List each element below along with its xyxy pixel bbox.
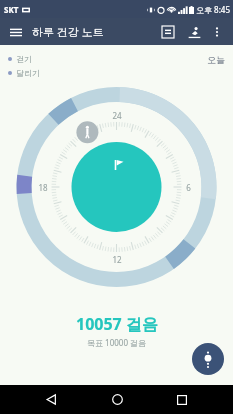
button[interactable]: More options: [207, 22, 227, 42]
staticText: 걷기: [16, 54, 32, 64]
staticText: 24: [112, 110, 122, 121]
button[interactable]: Home: [102, 385, 132, 414]
staticText: 12: [112, 254, 122, 265]
staticText: SKT: [4, 4, 19, 15]
staticText: 오후 8:45: [196, 4, 230, 15]
button[interactable]: Open navigation menu: [6, 22, 26, 42]
button[interactable]: Activity tracking: [183, 21, 205, 43]
staticText: 6: [186, 182, 191, 193]
staticText: 하루 건강 노트: [32, 24, 104, 39]
staticText: 달리기: [16, 68, 40, 78]
staticText: 10057 걸음: [76, 313, 158, 335]
staticText: 18: [38, 182, 48, 193]
button[interactable]: More actions: [192, 343, 224, 375]
button[interactable]: Calendar: [157, 21, 179, 43]
button[interactable]: Recent apps: [167, 385, 197, 414]
button[interactable]: Back: [36, 385, 66, 414]
staticText: 목표 10000 걸음: [87, 337, 147, 348]
button[interactable]: 오늘: [207, 54, 225, 65]
